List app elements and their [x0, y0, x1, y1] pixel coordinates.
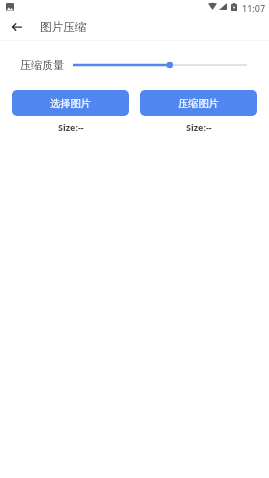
staticText: 压缩图片	[178, 97, 219, 110]
staticText: Size:--	[58, 121, 84, 133]
staticText: 图片压缩	[40, 20, 87, 35]
staticText: 压缩质量	[20, 58, 64, 72]
button[interactable]: 压缩图片	[140, 90, 257, 116]
staticText: 选择图片	[50, 97, 91, 110]
button[interactable]: Back	[7, 17, 26, 36]
button[interactable]: Compression quality slider	[73, 59, 247, 71]
staticText: 11:07	[242, 2, 266, 14]
button[interactable]: 选择图片	[12, 90, 129, 116]
staticText: Size:--	[186, 121, 212, 133]
